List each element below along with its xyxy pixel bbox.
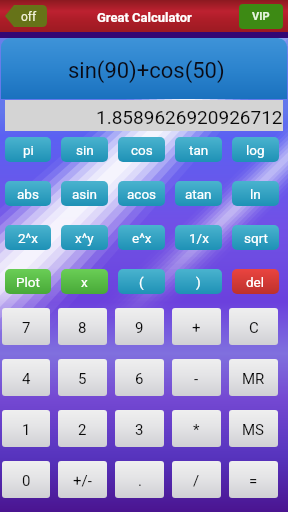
button[interactable]: 1/x — [175, 225, 222, 250]
button[interactable]: - — [172, 359, 221, 396]
button[interactable]: / — [172, 461, 221, 498]
button[interactable]: ( — [118, 269, 165, 294]
button[interactable]: atan — [175, 181, 222, 206]
staticText: abs — [17, 186, 39, 202]
staticText: MS — [242, 421, 265, 439]
button[interactable]: 3 — [115, 410, 164, 447]
staticText: 9 — [135, 319, 144, 337]
button[interactable]: 0 — [2, 461, 50, 498]
staticText: 1 — [22, 421, 31, 439]
staticText: 2^x — [18, 230, 38, 246]
button[interactable]: + — [172, 308, 221, 345]
staticText: 5 — [78, 370, 87, 388]
staticText: 6 — [135, 370, 144, 388]
staticText: pi — [23, 142, 34, 158]
staticText: acos — [127, 186, 157, 202]
button[interactable]: asin — [61, 181, 108, 206]
staticText: +/- — [73, 472, 92, 490]
button[interactable]: * — [172, 410, 221, 447]
staticText: 4 — [22, 370, 31, 388]
button[interactable]: = — [229, 461, 278, 498]
button[interactable]: pi — [5, 137, 51, 162]
staticText: Great Calculator — [97, 10, 192, 25]
button[interactable]: acos — [118, 181, 165, 206]
staticText: sin(90)+cos(50) — [68, 58, 225, 84]
button[interactable]: 6 — [115, 359, 164, 396]
staticText: = — [249, 472, 258, 490]
button[interactable]: C — [229, 308, 278, 345]
button[interactable]: 1 — [2, 410, 50, 447]
staticText: x — [81, 274, 88, 290]
button[interactable]: 9 — [115, 308, 164, 345]
button[interactable]: MR — [229, 359, 278, 396]
staticText: Plot — [16, 274, 40, 290]
button[interactable]: tan — [175, 137, 222, 162]
staticText: MR — [242, 370, 265, 388]
staticText: tan — [189, 142, 209, 158]
button[interactable]: +/- — [58, 461, 107, 498]
staticText: / — [193, 472, 200, 490]
staticText: VIP — [252, 10, 270, 23]
staticText: 7 — [22, 319, 31, 337]
button[interactable]: sqrt — [232, 225, 279, 250]
staticText: e^x — [132, 230, 152, 246]
button[interactable]: 4 — [2, 359, 50, 396]
staticText: log — [246, 142, 265, 158]
staticText: + — [192, 319, 201, 337]
button[interactable]: 2^x — [5, 225, 51, 250]
staticText: - — [194, 370, 199, 388]
button[interactable]: MS — [229, 410, 278, 447]
button[interactable]: ) — [175, 269, 222, 294]
staticText: ln — [250, 186, 261, 202]
staticText: . — [138, 472, 142, 490]
button[interactable]: cos — [118, 137, 165, 162]
button[interactable]: sin — [61, 137, 108, 162]
button[interactable]: 5 — [58, 359, 107, 396]
staticText: 2 — [78, 421, 87, 439]
button[interactable]: log — [232, 137, 279, 162]
button[interactable]: Plot — [5, 269, 51, 294]
staticText: 1/x — [189, 230, 209, 246]
staticText: asin — [72, 186, 98, 202]
staticText: 0 — [22, 472, 31, 490]
button[interactable]: del — [232, 269, 279, 294]
staticText: 8 — [78, 319, 87, 337]
button[interactable]: x^y — [61, 225, 108, 250]
button[interactable]: 1.8589626920926712 — [5, 100, 283, 131]
staticText: C — [249, 319, 259, 337]
button[interactable]: Power off — [5, 5, 47, 27]
staticText: sqrt — [244, 230, 268, 246]
staticText: 1.8589626920926712 — [96, 106, 283, 128]
staticText: off — [21, 10, 37, 24]
button[interactable]: x — [61, 269, 108, 294]
staticText: sin — [76, 142, 94, 158]
staticText: ( — [139, 274, 144, 290]
button[interactable]: 2 — [58, 410, 107, 447]
staticText: atan — [185, 186, 212, 202]
staticText: del — [246, 274, 265, 290]
button[interactable]: . — [115, 461, 164, 498]
staticText: * — [193, 421, 200, 439]
button[interactable]: abs — [5, 181, 51, 206]
staticText: 3 — [135, 421, 144, 439]
staticText: cos — [131, 142, 153, 158]
button[interactable]: 8 — [58, 308, 107, 345]
staticText: x^y — [75, 230, 94, 246]
button[interactable]: e^x — [118, 225, 165, 250]
button[interactable]: sin(90)+cos(50) — [1, 38, 287, 99]
button[interactable]: 7 — [2, 308, 50, 345]
staticText: ) — [196, 274, 201, 290]
button[interactable]: VIP — [239, 4, 283, 29]
button[interactable]: ln — [232, 181, 279, 206]
